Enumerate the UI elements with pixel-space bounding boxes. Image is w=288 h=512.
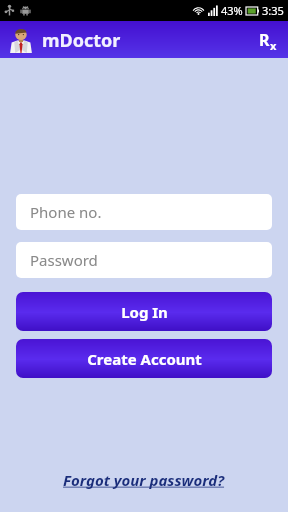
button[interactable]: Phone no. — [16, 194, 272, 230]
staticText: 43% — [221, 3, 243, 18]
button[interactable]: Log In — [16, 292, 272, 331]
staticText: x — [270, 38, 277, 53]
button[interactable]: Password — [16, 242, 272, 278]
button[interactable]: Create Account — [16, 339, 272, 378]
button[interactable]: Forgot your password? — [55, 466, 233, 494]
staticText: Password — [30, 250, 98, 270]
staticText: 3:35 — [262, 3, 284, 18]
staticText: Log In — [121, 302, 168, 322]
staticText: mDoctor — [42, 28, 121, 53]
button[interactable]: Prescriptions — [248, 21, 288, 58]
staticText: R — [259, 29, 270, 51]
staticText: Create Account — [87, 349, 202, 369]
staticText: Phone no. — [30, 202, 102, 222]
